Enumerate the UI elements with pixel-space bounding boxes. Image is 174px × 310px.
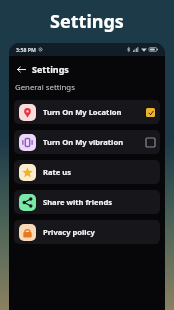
button[interactable]: Rate us bbox=[14, 160, 160, 184]
staticText: Settings bbox=[32, 63, 69, 75]
button[interactable]: Back bbox=[14, 62, 28, 76]
staticText: Privacy policy bbox=[43, 227, 95, 237]
staticText: Settings bbox=[50, 9, 124, 34]
button[interactable]: Turn On My Location bbox=[14, 100, 160, 124]
staticText: Turn On My vibration bbox=[43, 137, 124, 147]
button[interactable]: Privacy policy bbox=[14, 220, 160, 244]
other: Checked bbox=[146, 108, 155, 117]
button[interactable]: Turn On My vibration bbox=[14, 130, 160, 154]
staticText: Share with friends bbox=[43, 197, 113, 207]
staticText: Turn On My Location bbox=[43, 107, 122, 117]
other: Unchecked bbox=[146, 138, 155, 147]
staticText: General settings bbox=[15, 82, 75, 93]
staticText: Rate us bbox=[43, 167, 72, 177]
staticText: 3:58 PM bbox=[16, 46, 36, 53]
button[interactable]: Share with friends bbox=[14, 190, 160, 214]
